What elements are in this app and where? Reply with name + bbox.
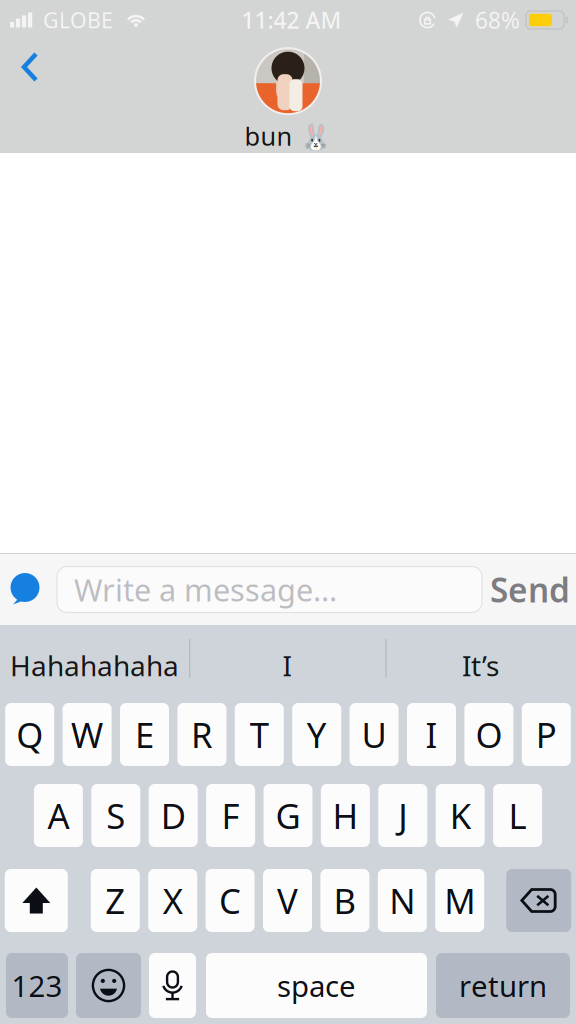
button[interactable]: Emoji [76, 953, 141, 1018]
button[interactable]: H [321, 784, 370, 847]
staticText: T [250, 711, 269, 757]
staticText: S [106, 792, 125, 838]
staticText: Hahahahaha [10, 647, 179, 684]
button[interactable]: B [320, 869, 369, 932]
button[interactable]: Back [8, 43, 52, 91]
button[interactable]: V [263, 869, 312, 932]
button[interactable]: E [120, 703, 169, 766]
button[interactable]: K [436, 784, 485, 847]
button[interactable]: space [206, 953, 427, 1018]
button[interactable]: X [148, 869, 197, 932]
button[interactable]: It’s [385, 637, 576, 694]
staticText: R [191, 711, 213, 757]
button[interactable]: Y [292, 703, 341, 766]
button[interactable]: A [34, 784, 83, 847]
staticText: N [389, 877, 415, 923]
staticText: W [71, 711, 103, 757]
staticText: A [47, 792, 69, 838]
button[interactable]: I [407, 703, 456, 766]
button[interactable]: Dictate [149, 953, 196, 1018]
staticText: F [222, 792, 240, 838]
staticText: P [536, 711, 557, 757]
staticText: I [282, 647, 291, 684]
staticText: M [444, 877, 475, 923]
staticText: Y [307, 711, 327, 757]
staticText: L [509, 792, 527, 838]
staticText: bun 🐰 [244, 119, 331, 153]
button[interactable]: O [464, 703, 513, 766]
staticText: B [333, 877, 356, 923]
button[interactable]: 123 [6, 953, 68, 1018]
staticText: D [161, 792, 186, 838]
staticText: Write a message... [74, 569, 337, 610]
button[interactable]: D [149, 784, 198, 847]
button[interactable]: S [91, 784, 140, 847]
staticText: X [163, 877, 183, 923]
staticText: J [398, 792, 407, 838]
staticText: C [219, 877, 241, 923]
staticText: Send [490, 567, 570, 612]
button[interactable]: Delete [506, 869, 571, 932]
staticText: 68% [475, 5, 520, 35]
button[interactable]: Attach [3, 567, 47, 611]
staticText: E [135, 711, 154, 757]
button[interactable]: M [435, 869, 484, 932]
button[interactable]: Hahahahaha [0, 637, 189, 694]
staticText: K [450, 792, 471, 838]
staticText: O [475, 711, 502, 757]
button[interactable]: G [263, 784, 312, 847]
button[interactable]: T [235, 703, 284, 766]
staticText: space [277, 966, 356, 1005]
staticText: Z [105, 877, 125, 923]
button[interactable]: J [378, 784, 427, 847]
button[interactable]: L [493, 784, 542, 847]
button[interactable]: F [206, 784, 255, 847]
staticText: return [459, 966, 547, 1005]
staticText: Q [16, 711, 43, 757]
button[interactable]: R [177, 703, 226, 766]
button[interactable]: C [206, 869, 255, 932]
button[interactable]: N [378, 869, 427, 932]
staticText: 11:42 AM [241, 5, 341, 35]
staticText: It’s [462, 647, 499, 684]
staticText: 123 [11, 966, 62, 1005]
button[interactable]: Z [91, 869, 140, 932]
button[interactable]: Shift [5, 869, 68, 932]
button[interactable]: Q [5, 703, 54, 766]
staticText: V [277, 877, 298, 923]
staticText: G [275, 792, 300, 838]
button[interactable]: W [63, 703, 112, 766]
button[interactable]: U [350, 703, 399, 766]
staticText: GLOBE [43, 6, 113, 34]
button[interactable]: Send [490, 567, 576, 612]
button[interactable]: return [436, 953, 570, 1018]
staticText: I [425, 711, 437, 757]
staticText: H [332, 792, 358, 838]
button[interactable]: I [189, 637, 385, 694]
button[interactable]: Write a message... [57, 566, 482, 612]
button[interactable]: P [522, 703, 571, 766]
staticText: U [362, 711, 387, 757]
